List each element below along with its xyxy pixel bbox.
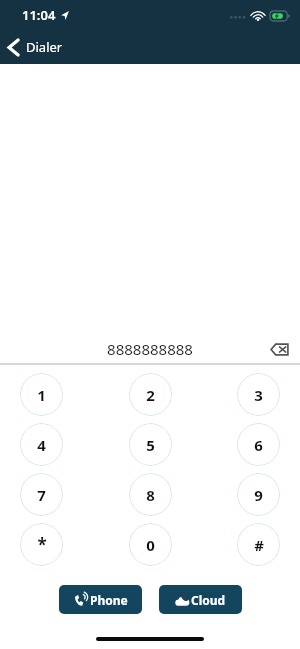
button[interactable]: # <box>237 523 280 566</box>
staticText: 11:04 <box>22 6 56 24</box>
staticText: 3 <box>254 385 263 405</box>
button[interactable]: Backspace <box>266 336 292 362</box>
staticText: 4 <box>37 435 46 455</box>
staticText: 7 <box>37 485 46 505</box>
staticText: Phone <box>90 592 128 608</box>
button[interactable]: 9 <box>237 473 280 516</box>
staticText: 2 <box>146 385 155 405</box>
staticText: 8888888888 <box>107 339 193 359</box>
staticText: Cloud <box>191 592 226 608</box>
button[interactable]: Cloud <box>159 585 242 614</box>
button[interactable]: 1 <box>20 373 63 416</box>
staticText: 8 <box>146 485 155 505</box>
button[interactable]: 3 <box>237 373 280 416</box>
staticText: 0 <box>146 535 155 555</box>
staticText: * <box>37 533 47 556</box>
staticText: 9 <box>254 485 263 505</box>
button[interactable]: 7 <box>20 473 63 516</box>
button[interactable]: 4 <box>20 423 63 466</box>
button[interactable]: Phone <box>59 585 142 614</box>
staticText: # <box>254 535 264 555</box>
staticText: 5 <box>146 435 155 455</box>
staticText: 1 <box>37 385 46 405</box>
button[interactable]: 8 <box>129 473 172 516</box>
staticText: 6 <box>254 435 263 455</box>
button[interactable]: 5 <box>129 423 172 466</box>
staticText: Dialer <box>26 38 63 56</box>
button[interactable]: 6 <box>237 423 280 466</box>
button[interactable]: Dialer <box>0 34 73 60</box>
button[interactable]: 0 <box>129 523 172 566</box>
button[interactable]: 2 <box>129 373 172 416</box>
button[interactable]: * <box>20 523 63 566</box>
